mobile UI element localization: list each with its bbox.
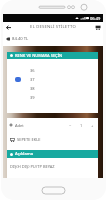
button[interactable]: Açıklama (7, 150, 98, 158)
staticText: RENK VE NUMARA SEÇİN (15, 53, 63, 58)
button[interactable]: 1 (77, 121, 86, 130)
staticText: 06:49 (90, 16, 101, 21)
button[interactable]: 37 (15, 75, 98, 84)
button[interactable]: + (88, 121, 97, 130)
button[interactable]: − (66, 121, 75, 130)
button[interactable]: 36 (15, 66, 98, 75)
staticText: DIŞ(H DIŞ) PU/TP BEYAZ (10, 164, 55, 169)
staticText: 38 (30, 86, 35, 91)
button[interactable]: Back (3, 22, 13, 32)
staticText: 37 (30, 77, 35, 82)
staticText: Adet (15, 123, 24, 128)
staticText: EL DESENLİ STİLETTO (13, 24, 93, 30)
button[interactable]: 38 (15, 84, 98, 93)
staticText: + (91, 123, 94, 128)
button[interactable]: SEPETE EKLE (7, 132, 98, 146)
staticText: 84.40 TL (12, 36, 29, 42)
staticText: 39 (30, 95, 35, 100)
button[interactable]: Shopping cart (93, 22, 103, 32)
button[interactable]: 39 (15, 93, 98, 102)
staticText: 36 (30, 68, 35, 73)
button[interactable]: RENK VE NUMARA SEÇİN (7, 52, 98, 59)
staticText: Açıklama (15, 151, 34, 157)
staticText: − (69, 123, 72, 128)
staticText: 1 (80, 123, 83, 128)
staticText: SEPETE EKLE (17, 137, 41, 142)
